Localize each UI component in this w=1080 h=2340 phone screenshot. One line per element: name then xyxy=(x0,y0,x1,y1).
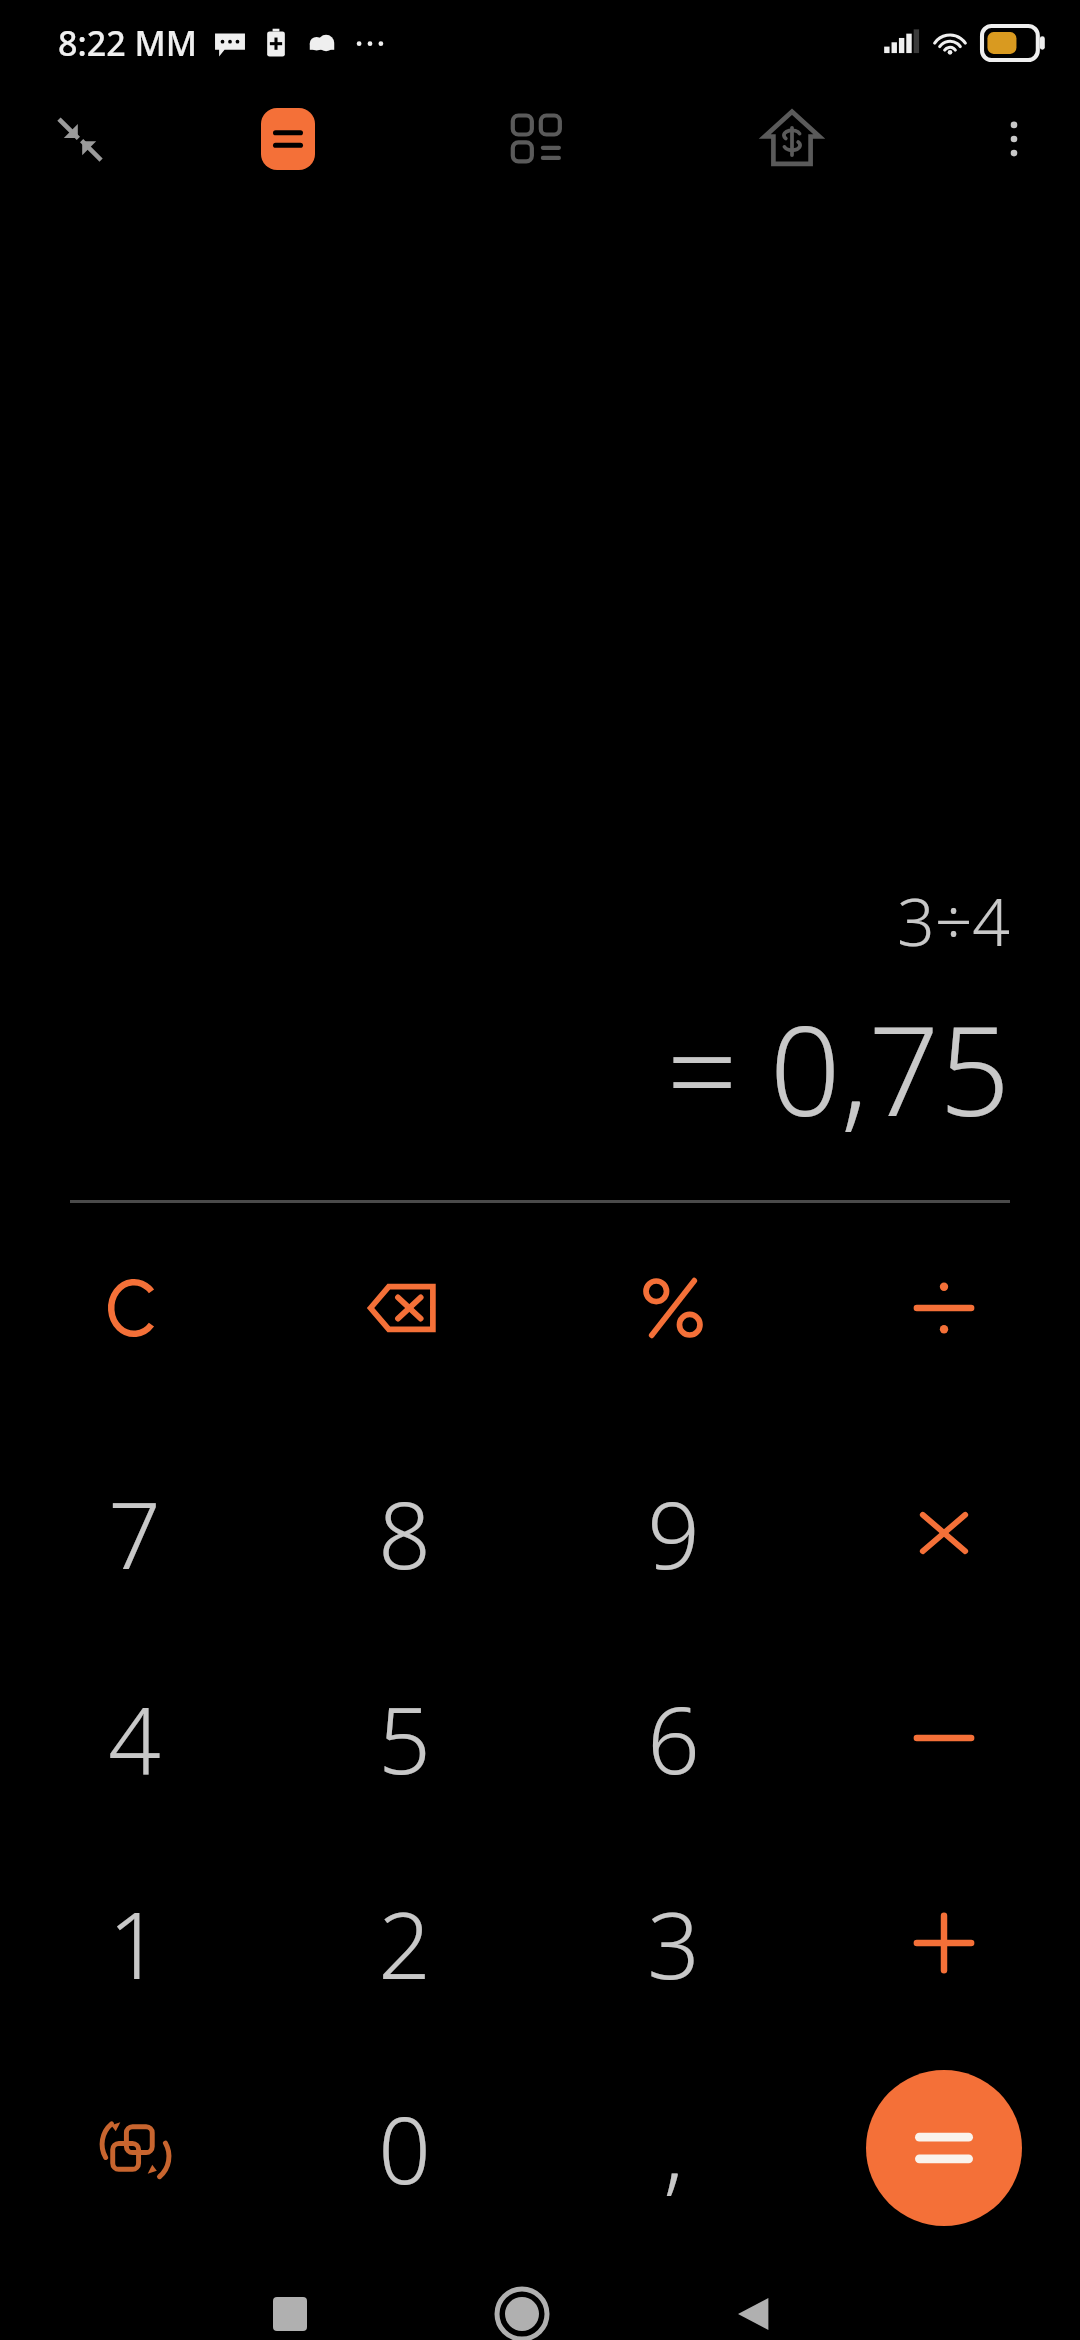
button[interactable]: Divide xyxy=(854,1218,1034,1398)
button[interactable]: Percent xyxy=(583,1218,763,1398)
button[interactable]: Swap xyxy=(44,2058,224,2238)
staticText: , xyxy=(663,2086,684,2211)
button[interactable]: 7 xyxy=(44,1443,224,1623)
button[interactable]: Unit converter xyxy=(500,101,576,177)
staticText: 1 xyxy=(108,1881,161,2006)
button[interactable]: 1 xyxy=(44,1853,224,2033)
button[interactable]: 0 xyxy=(314,2058,494,2238)
button[interactable]: Multiply xyxy=(854,1443,1034,1623)
button[interactable]: 3 xyxy=(583,1853,763,2033)
staticText: 5 xyxy=(378,1676,431,1801)
button[interactable]: Clear xyxy=(44,1218,224,1398)
button[interactable]: Back xyxy=(694,2288,814,2340)
button[interactable]: Calculator xyxy=(250,101,326,177)
button[interactable]: Equals xyxy=(866,2070,1022,2226)
button[interactable]: Plus xyxy=(854,1853,1034,2033)
staticText: 8:22 MM xyxy=(58,20,197,66)
staticText: 9 xyxy=(647,1471,700,1596)
staticText: 4 xyxy=(108,1676,161,1801)
button[interactable]: 4 xyxy=(44,1648,224,1828)
button[interactable]: 9 xyxy=(583,1443,763,1623)
button[interactable]: Minus xyxy=(854,1648,1034,1828)
button[interactable]: 8 xyxy=(314,1443,494,1623)
staticText: = 0,75 xyxy=(666,983,1010,1152)
staticText: 0 xyxy=(378,2086,431,2211)
button[interactable]: 2 xyxy=(314,1853,494,2033)
button[interactable]: Backspace xyxy=(314,1218,494,1398)
staticText: 6 xyxy=(647,1676,700,1801)
button[interactable]: More options xyxy=(976,101,1052,177)
button[interactable]: Recents xyxy=(230,2288,350,2340)
button[interactable]: 5 xyxy=(314,1648,494,1828)
button[interactable]: Collapse xyxy=(42,101,118,177)
button[interactable]: , xyxy=(583,2058,763,2238)
staticText: 3 xyxy=(647,1881,700,2006)
staticText: 8 xyxy=(378,1471,431,1596)
staticText: 7 xyxy=(108,1471,161,1596)
staticText: 2 xyxy=(378,1881,431,2006)
button[interactable]: Home xyxy=(462,2288,582,2340)
staticText: 3÷4 xyxy=(896,875,1010,965)
button[interactable]: 6 xyxy=(583,1648,763,1828)
button[interactable]: Mortgage xyxy=(752,99,832,179)
